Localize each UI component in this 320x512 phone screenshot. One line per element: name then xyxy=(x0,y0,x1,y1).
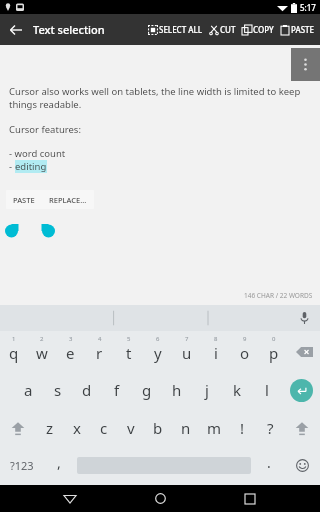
button[interactable]: 4 xyxy=(85,331,114,371)
staticText: z xyxy=(46,418,54,438)
button[interactable]: Shift xyxy=(284,409,320,447)
button[interactable]: v xyxy=(117,409,144,447)
staticText: r xyxy=(96,343,103,363)
staticText: editing xyxy=(15,160,47,173)
button[interactable]: 7 xyxy=(172,331,201,371)
staticText: k xyxy=(233,380,242,400)
button[interactable]: d xyxy=(72,371,102,409)
button[interactable]: k xyxy=(222,371,252,409)
button[interactable]: l xyxy=(252,371,282,409)
button[interactable]: 6 xyxy=(143,331,172,371)
staticText: 146 CHAR / 22 WORDS xyxy=(244,291,313,300)
staticText: PASTE xyxy=(13,195,35,205)
button[interactable]: CUT xyxy=(206,14,239,45)
staticText: ! xyxy=(240,418,245,438)
button[interactable]: Backspace xyxy=(288,331,320,371)
staticText: s xyxy=(54,380,62,400)
staticText: b xyxy=(153,418,163,438)
staticText: g xyxy=(142,380,152,400)
button[interactable]: . xyxy=(254,447,284,483)
staticText: COPY xyxy=(253,24,274,35)
button[interactable]: c xyxy=(90,409,117,447)
button[interactable]: f xyxy=(102,371,132,409)
staticText: PASTE xyxy=(291,24,315,35)
staticText: t xyxy=(126,343,132,363)
button[interactable]: ! xyxy=(228,409,256,447)
staticText: y xyxy=(154,343,162,363)
button[interactable]: 1 xyxy=(0,331,28,371)
staticText: Cursor features: xyxy=(9,123,81,136)
staticText: n xyxy=(181,418,191,438)
staticText: x xyxy=(73,418,81,438)
staticText: j xyxy=(205,380,209,400)
button[interactable]: z xyxy=(36,409,63,447)
staticText: l xyxy=(265,380,269,400)
button[interactable]: 5 xyxy=(114,331,143,371)
button[interactable]: Home xyxy=(140,485,180,512)
button[interactable]: x xyxy=(63,409,90,447)
staticText: - xyxy=(9,160,15,173)
staticText: c xyxy=(100,418,108,438)
button[interactable]: a xyxy=(14,371,43,409)
button[interactable]: h xyxy=(162,371,192,409)
staticText: 2 xyxy=(40,335,44,343)
button[interactable]: 2 xyxy=(28,331,56,371)
button[interactable]: s xyxy=(43,371,72,409)
staticText: f xyxy=(114,380,120,400)
button[interactable]: ?123 xyxy=(0,447,44,483)
staticText: 0 xyxy=(272,335,276,343)
staticText: - word count xyxy=(9,147,66,160)
staticText: q xyxy=(9,343,19,363)
button[interactable]: 3 xyxy=(56,331,85,371)
staticText: 3 xyxy=(69,335,73,343)
button[interactable]: Back xyxy=(50,485,90,512)
button[interactable]: Voice input xyxy=(296,310,312,326)
button[interactable]: More options xyxy=(291,48,320,81)
button[interactable]: 9 xyxy=(230,331,259,371)
button[interactable]: Recent apps xyxy=(230,485,270,512)
staticText: o xyxy=(240,343,250,363)
staticText: m xyxy=(207,418,222,438)
staticText: SELECT ALL xyxy=(159,24,203,35)
staticText: 1 xyxy=(12,335,16,343)
button[interactable]: g xyxy=(132,371,162,409)
staticText: . xyxy=(267,453,271,472)
button[interactable]: 0 xyxy=(259,331,288,371)
staticText: e xyxy=(66,343,75,363)
button[interactable]: Back xyxy=(0,14,31,45)
button[interactable]: 8 xyxy=(201,331,230,371)
button[interactable]: n xyxy=(172,409,200,447)
staticText: 5:17 xyxy=(300,2,316,13)
staticText: 8 xyxy=(214,335,218,343)
staticText: d xyxy=(82,380,92,400)
staticText: v xyxy=(127,418,135,438)
staticText: REPLACE... xyxy=(49,195,87,205)
staticText: , xyxy=(57,453,61,472)
button[interactable]: PASTE xyxy=(6,190,42,209)
staticText: CUT xyxy=(220,24,236,35)
button[interactable]: b xyxy=(144,409,172,447)
button[interactable]: SELECT ALL xyxy=(145,14,206,45)
button[interactable]: m xyxy=(200,409,228,447)
button[interactable]: j xyxy=(192,371,222,409)
staticText: u xyxy=(182,343,192,363)
staticText: h xyxy=(172,380,182,400)
button[interactable]: Space xyxy=(74,447,254,483)
button[interactable]: Shift xyxy=(0,409,36,447)
staticText: 9 xyxy=(243,335,247,343)
button[interactable]: , xyxy=(44,447,74,483)
staticText: ? xyxy=(267,418,274,438)
staticText: Cursor also works well on tablets, the l… xyxy=(9,85,311,111)
button[interactable]: COPY xyxy=(239,14,277,45)
staticText: a xyxy=(24,380,33,400)
button[interactable]: Emoji xyxy=(284,447,320,483)
staticText: i xyxy=(214,343,218,363)
button[interactable]: ? xyxy=(256,409,284,447)
button[interactable]: REPLACE... xyxy=(42,190,94,209)
staticText: p xyxy=(269,343,279,363)
staticText: w xyxy=(36,343,48,363)
button[interactable]: PASTE xyxy=(277,14,318,45)
staticText: 6 xyxy=(156,335,160,343)
button[interactable]: Enter xyxy=(282,371,320,409)
staticText: Text selection xyxy=(33,22,105,37)
